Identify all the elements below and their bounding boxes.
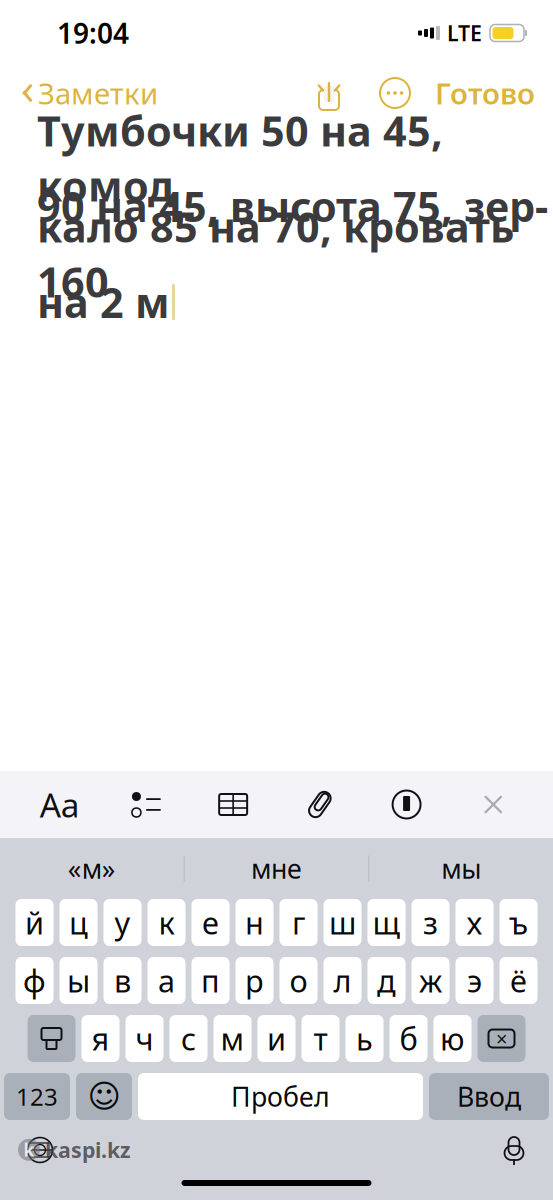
button[interactable]: Вложение bbox=[293, 777, 347, 831]
staticText: ☺ bbox=[87, 1078, 120, 1115]
button[interactable]: Эмодзи bbox=[76, 1073, 132, 1120]
button[interactable]: Готово bbox=[435, 67, 553, 118]
staticText: л bbox=[333, 960, 351, 1001]
button[interactable]: Заметки bbox=[0, 67, 158, 118]
staticText: «м» bbox=[68, 851, 116, 886]
button[interactable]: щ bbox=[367, 899, 405, 946]
staticText: у bbox=[114, 902, 130, 943]
staticText: LTE bbox=[447, 19, 482, 47]
staticText: е bbox=[202, 902, 219, 943]
staticText: k bbox=[23, 1138, 34, 1161]
button[interactable]: у bbox=[103, 899, 141, 946]
button[interactable]: Таблица bbox=[206, 777, 260, 831]
button[interactable]: Пробел bbox=[138, 1073, 423, 1120]
staticText: ч bbox=[135, 1018, 153, 1059]
button[interactable]: ш bbox=[323, 899, 361, 946]
staticText: ъ bbox=[509, 902, 528, 943]
staticText: ф bbox=[23, 960, 46, 1001]
staticText: Aa bbox=[40, 782, 80, 827]
staticText: й bbox=[25, 902, 44, 943]
staticText: д bbox=[377, 960, 396, 1001]
button[interactable]: р bbox=[235, 957, 273, 1004]
button[interactable]: ч bbox=[125, 1015, 163, 1062]
staticText: кало 85 на 70, кровать 160 bbox=[37, 199, 514, 309]
button[interactable]: Закрыть bbox=[466, 777, 520, 831]
button[interactable]: с bbox=[169, 1015, 207, 1062]
button[interactable]: ъ bbox=[499, 899, 537, 946]
button[interactable]: ж bbox=[411, 957, 449, 1004]
staticText: на 2 м bbox=[37, 275, 170, 329]
button[interactable]: ь bbox=[345, 1015, 383, 1062]
button[interactable]: э bbox=[455, 957, 493, 1004]
staticText: ц bbox=[69, 902, 88, 943]
staticText: м bbox=[220, 1018, 244, 1059]
button[interactable]: Список bbox=[119, 777, 173, 831]
staticText: ю bbox=[440, 1018, 465, 1059]
staticText: ш bbox=[329, 902, 356, 943]
button[interactable]: «м» bbox=[0, 838, 184, 898]
button[interactable]: к bbox=[147, 899, 185, 946]
button[interactable]: е bbox=[191, 899, 229, 946]
staticText: ж bbox=[419, 960, 442, 1001]
button[interactable]: Разметка bbox=[380, 777, 434, 831]
button[interactable]: Диктовка bbox=[483, 1134, 545, 1166]
staticText: мы bbox=[441, 851, 481, 886]
staticText: щ bbox=[372, 902, 400, 943]
staticText: ё bbox=[510, 960, 527, 1001]
staticText: с bbox=[181, 1018, 196, 1059]
button[interactable]: ф bbox=[15, 957, 53, 1004]
staticText: × bbox=[496, 1025, 507, 1052]
staticText: 123 bbox=[16, 1081, 58, 1112]
staticText: р bbox=[245, 960, 264, 1001]
button[interactable]: й bbox=[15, 899, 53, 946]
button[interactable]: Поделиться bbox=[311, 73, 347, 113]
button[interactable]: мы bbox=[369, 838, 553, 898]
staticText: Тумбочки 50 на 45, комод bbox=[37, 103, 443, 213]
staticText: я bbox=[91, 1018, 109, 1059]
button[interactable]: Shift bbox=[27, 1015, 75, 1062]
staticText: в bbox=[114, 960, 131, 1001]
staticText: х bbox=[466, 902, 482, 943]
button[interactable]: 123 bbox=[4, 1073, 70, 1120]
staticText: 90 на 45, высота 75, зер- bbox=[37, 179, 548, 233]
button[interactable]: ю bbox=[433, 1015, 471, 1062]
button[interactable]: л bbox=[323, 957, 361, 1004]
button[interactable]: Формат bbox=[33, 777, 87, 831]
staticText: и bbox=[267, 1018, 286, 1059]
staticText: з bbox=[423, 902, 438, 943]
button[interactable]: ё bbox=[499, 957, 537, 1004]
button[interactable]: Сменить язык bbox=[8, 1118, 72, 1182]
button[interactable]: м bbox=[213, 1015, 251, 1062]
button[interactable]: о bbox=[279, 957, 317, 1004]
staticText: п bbox=[201, 960, 220, 1001]
button[interactable]: н bbox=[235, 899, 273, 946]
button[interactable]: т bbox=[301, 1015, 339, 1062]
button[interactable]: п bbox=[191, 957, 229, 1004]
button[interactable]: ы bbox=[59, 957, 97, 1004]
staticText: т bbox=[313, 1018, 327, 1059]
button[interactable]: мне bbox=[185, 838, 368, 898]
button[interactable]: и bbox=[257, 1015, 295, 1062]
staticText: Пробел bbox=[231, 1079, 330, 1114]
button[interactable]: а bbox=[147, 957, 185, 1004]
staticText: н bbox=[245, 902, 264, 943]
staticText: к bbox=[158, 902, 174, 943]
staticText: а bbox=[158, 960, 175, 1001]
button[interactable]: Ещё bbox=[377, 73, 413, 113]
button[interactable]: г bbox=[279, 899, 317, 946]
button[interactable]: в bbox=[103, 957, 141, 1004]
staticText: 19:04 bbox=[57, 14, 129, 52]
button[interactable]: Ввод bbox=[429, 1073, 549, 1120]
button[interactable]: б bbox=[389, 1015, 427, 1062]
staticText: г bbox=[292, 902, 305, 943]
staticText: Заметки bbox=[38, 73, 158, 112]
staticText: э bbox=[467, 960, 482, 1001]
button[interactable]: д bbox=[367, 957, 405, 1004]
staticText: kaspi.kz bbox=[45, 1136, 131, 1164]
button[interactable]: Удалить bbox=[477, 1015, 525, 1062]
button[interactable]: х bbox=[455, 899, 493, 946]
staticText: о bbox=[289, 960, 307, 1001]
button[interactable]: я bbox=[81, 1015, 119, 1062]
button[interactable]: з bbox=[411, 899, 449, 946]
button[interactable]: ц bbox=[59, 899, 97, 946]
